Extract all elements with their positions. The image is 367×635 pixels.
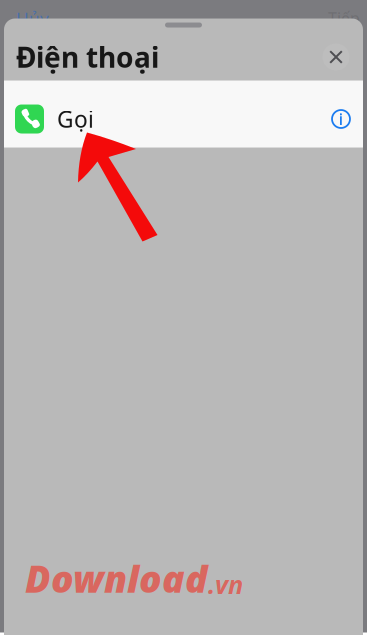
staticText: Tiếp — [328, 7, 360, 29]
button[interactable]: Gọi — [4, 80, 363, 147]
staticText: Gọi — [57, 104, 94, 134]
staticText: Download — [25, 553, 208, 603]
staticText: Điện thoại — [16, 38, 159, 76]
button[interactable]: Close — [314, 32, 358, 76]
staticText: .vn — [208, 567, 243, 601]
staticText: i — [338, 108, 343, 130]
staticText: Hủy — [16, 7, 49, 30]
